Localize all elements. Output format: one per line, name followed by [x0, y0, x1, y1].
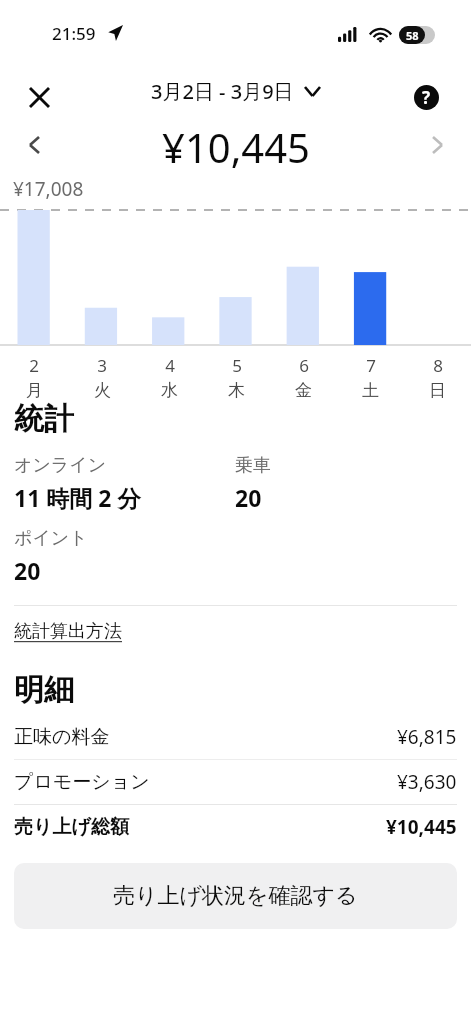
staticText: 20 — [14, 555, 41, 586]
staticText: オンライン — [14, 454, 107, 477]
staticText: 木 — [228, 380, 245, 401]
button[interactable]: Help — [405, 76, 447, 118]
staticText: 11 時間 2 分 — [14, 482, 141, 513]
staticText: 21:59 — [52, 22, 96, 45]
button[interactable]: 6 — [270, 354, 337, 401]
staticText: 統計算出方法 — [14, 620, 122, 643]
button[interactable]: 7 — [337, 354, 404, 401]
button[interactable]: 5 — [203, 354, 270, 401]
staticText: 乗車 — [235, 454, 271, 477]
button[interactable]: 売り上げ総額 — [14, 805, 457, 849]
staticText: 2 — [29, 354, 39, 377]
staticText: 明細 — [14, 671, 74, 709]
staticText: 4 — [165, 354, 175, 377]
staticText: 5 — [232, 354, 242, 377]
staticText: ¥10,445 — [162, 120, 310, 174]
staticText: 統計 — [14, 400, 74, 438]
staticText: 金 — [295, 380, 312, 401]
button[interactable]: 3 — [68, 354, 136, 401]
staticText: 売り上げ総額 — [14, 815, 129, 839]
button[interactable]: 統計算出方法 — [14, 620, 122, 643]
button[interactable]: 3月2日 - 3月9日 — [151, 78, 320, 105]
staticText: 日 — [429, 380, 446, 401]
staticText: 土 — [362, 380, 379, 401]
staticText: 3月2日 - 3月9日 — [151, 78, 294, 105]
staticText: 火 — [94, 380, 111, 401]
button[interactable]: プロモーション — [14, 760, 457, 804]
staticText: 20 — [235, 482, 262, 513]
button[interactable]: 4 — [136, 354, 203, 401]
staticText: 7 — [366, 354, 376, 377]
staticText: 8 — [433, 354, 443, 377]
staticText: 6 — [299, 354, 309, 377]
button[interactable]: 2 — [0, 354, 68, 401]
staticText: 正味の料金 — [14, 725, 110, 749]
staticText: 売り上げ状況を確認する — [113, 882, 358, 910]
staticText: プロモーション — [14, 770, 150, 794]
staticText: ¥10,445 — [386, 814, 457, 840]
staticText: ¥17,008 — [13, 176, 84, 202]
staticText: ? — [422, 86, 431, 109]
button[interactable]: Previous week — [12, 123, 56, 167]
button[interactable]: 8 — [404, 354, 471, 401]
button[interactable]: Next week — [415, 123, 459, 167]
staticText: 月 — [26, 380, 43, 401]
staticText: ¥6,815 — [397, 724, 457, 750]
staticText: 水 — [161, 380, 178, 401]
staticText: ポイント — [14, 527, 88, 550]
staticText: ¥3,630 — [397, 769, 457, 795]
staticText: 3 — [97, 354, 107, 377]
button[interactable]: 正味の料金 — [14, 715, 457, 759]
button[interactable]: 売り上げ状況を確認する — [14, 863, 457, 929]
staticText: 58 — [406, 28, 419, 43]
button[interactable]: Close — [18, 76, 60, 118]
